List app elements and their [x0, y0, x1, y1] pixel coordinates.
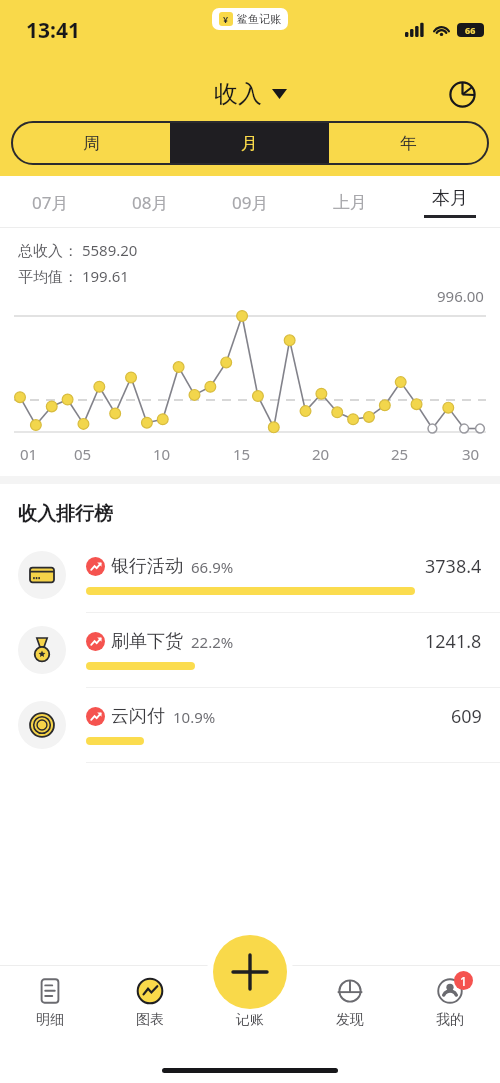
- staticText: 66.9%: [191, 557, 234, 577]
- staticText: 图表: [136, 1011, 164, 1029]
- staticText: 15: [233, 444, 251, 464]
- staticText: 66: [465, 24, 476, 36]
- staticText: 月: [241, 133, 258, 154]
- button[interactable]: Pie chart report: [442, 74, 482, 114]
- staticText: 09月: [232, 191, 269, 214]
- staticText: 07月: [32, 191, 69, 214]
- staticText: 3738.4: [425, 554, 482, 579]
- button[interactable]: 周: [12, 122, 170, 164]
- staticText: 996.00: [437, 286, 484, 306]
- staticText: 1: [460, 973, 467, 989]
- button[interactable]: Add record: [213, 935, 287, 1009]
- staticText: 609: [451, 704, 482, 729]
- staticText: 平均值： 199.61: [18, 266, 129, 286]
- staticText: 总收入： 5589.20: [18, 240, 138, 260]
- staticText: 明细: [36, 1011, 64, 1029]
- button[interactable]: 1: [400, 975, 500, 1049]
- staticText: 10: [153, 444, 171, 464]
- staticText: 08月: [132, 191, 169, 214]
- button[interactable]: 发现: [300, 975, 400, 1049]
- staticText: ¥: [223, 13, 229, 25]
- staticText: 年: [400, 133, 417, 154]
- staticText: 我的: [436, 1011, 464, 1029]
- staticText: 30: [462, 444, 480, 464]
- staticText: 刷单下货: [111, 630, 183, 653]
- button[interactable]: 记账: [200, 975, 300, 1049]
- staticText: 周: [83, 133, 100, 154]
- button[interactable]: 云闪付: [0, 688, 500, 762]
- staticText: 收入排行榜: [18, 502, 113, 526]
- button[interactable]: 08月: [100, 176, 200, 228]
- staticText: 25: [391, 444, 409, 464]
- staticText: 10.9%: [173, 707, 216, 727]
- staticText: 22.2%: [191, 632, 234, 652]
- staticText: 上月: [333, 192, 367, 213]
- staticText: 05: [74, 444, 92, 464]
- staticText: 云闪付: [111, 705, 165, 728]
- button[interactable]: 年: [329, 122, 488, 164]
- staticText: 1241.8: [425, 629, 482, 654]
- button[interactable]: 刷单下货: [0, 613, 500, 687]
- staticText: 13:41: [26, 16, 80, 45]
- button[interactable]: 银行活动: [0, 538, 500, 612]
- staticText: 本月: [432, 187, 468, 210]
- staticText: 收入: [214, 79, 262, 109]
- staticText: 银行活动: [111, 555, 183, 578]
- button[interactable]: 07月: [0, 176, 100, 228]
- staticText: 发现: [336, 1011, 364, 1029]
- staticText: 01: [20, 444, 38, 464]
- button[interactable]: 图表: [100, 975, 200, 1049]
- button[interactable]: 明细: [0, 975, 100, 1049]
- button[interactable]: 本月: [400, 176, 500, 228]
- staticText: 记账: [236, 1011, 264, 1029]
- button[interactable]: 09月: [200, 176, 300, 228]
- button[interactable]: 上月: [300, 176, 400, 228]
- button[interactable]: 月: [170, 122, 329, 164]
- button[interactable]: 收入: [214, 79, 287, 109]
- staticText: 20: [312, 444, 330, 464]
- staticText: 鲨鱼记账: [237, 12, 281, 26]
